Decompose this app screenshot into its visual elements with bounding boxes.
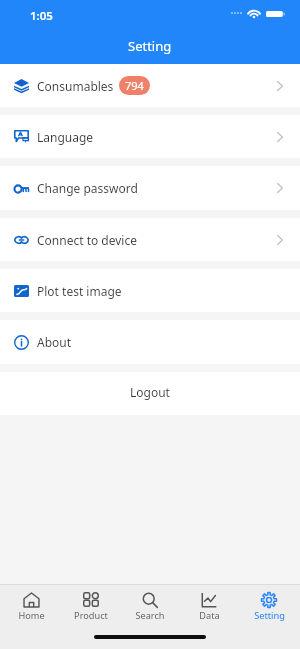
staticText: Home xyxy=(18,609,45,622)
staticText: Connect to device xyxy=(37,232,137,248)
button[interactable]: Product xyxy=(63,585,119,622)
staticText: Language xyxy=(37,129,94,145)
staticText: About xyxy=(37,334,72,350)
button[interactable]: Logout xyxy=(0,372,300,415)
staticText: Plot test image xyxy=(37,283,122,299)
staticText: Change password xyxy=(37,180,138,196)
button[interactable]: Consumables xyxy=(0,64,300,107)
button[interactable]: Data xyxy=(181,585,237,622)
staticText: Search xyxy=(135,609,165,622)
button[interactable]: Language xyxy=(0,115,300,158)
button[interactable]: Connect to device xyxy=(0,218,300,261)
button[interactable]: About xyxy=(0,320,300,364)
button[interactable]: Change password xyxy=(0,166,300,210)
staticText: Data xyxy=(199,609,220,622)
staticText: 1:05 xyxy=(30,8,53,24)
button[interactable]: Search xyxy=(122,585,178,622)
staticText: Consumables xyxy=(37,78,114,94)
staticText: Product xyxy=(74,609,108,622)
button[interactable]: Home xyxy=(3,585,59,622)
staticText: Setting xyxy=(128,37,172,55)
staticText: 794 xyxy=(125,78,144,93)
button[interactable]: Plot test image xyxy=(0,269,300,312)
staticText: Logout xyxy=(130,384,170,400)
staticText: Setting xyxy=(254,609,285,622)
button[interactable]: Setting xyxy=(241,585,297,622)
